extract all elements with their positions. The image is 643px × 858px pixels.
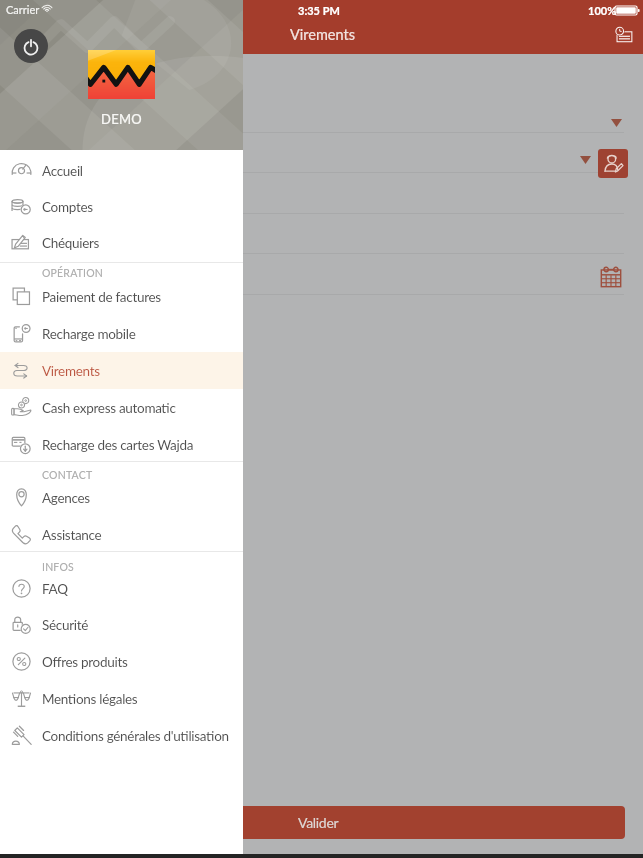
button[interactable]: Choisir un bénéficiaire [598, 149, 628, 178]
button[interactable]: Recharge des cartes Wajda [0, 426, 243, 463]
button[interactable]: Déconnexion [14, 29, 48, 63]
staticText: 3:35 PM [298, 4, 340, 17]
staticText: Accueil [42, 163, 83, 179]
button[interactable]: Assistance [0, 516, 243, 553]
button[interactable]: Choisir une date [600, 266, 622, 288]
button[interactable]: Mentions légales [0, 680, 243, 717]
button[interactable]: Chéquiers [0, 224, 243, 261]
button[interactable]: Paiement de factures [0, 278, 243, 315]
staticText: Assistance [42, 527, 102, 543]
button[interactable]: Accueil [0, 152, 243, 189]
staticText: FAQ [42, 581, 68, 597]
staticText: Virements [42, 363, 100, 379]
button[interactable]: Conditions générales d'utilisation [0, 717, 243, 754]
staticText: Sécurité [42, 617, 89, 633]
staticText: Recharge des cartes Wajda [42, 437, 194, 453]
staticText: Mentions légales [42, 691, 138, 707]
staticText: Carrier [6, 3, 40, 16]
staticText: DEMO [101, 111, 143, 127]
staticText: Cash express automatic [42, 400, 176, 416]
staticText: Agences [42, 490, 90, 506]
staticText: OPÉRATION [42, 267, 104, 280]
staticText: Conditions générales d'utilisation [42, 728, 229, 744]
button[interactable]: Cash express automatic [0, 389, 243, 426]
button[interactable]: Valider [160, 806, 625, 839]
button[interactable]: Recharge mobile [0, 315, 243, 352]
staticText: Comptes [42, 199, 93, 215]
button[interactable]: Historique des virements [610, 22, 636, 48]
staticText: INFOS [42, 561, 74, 574]
staticText: 100% [588, 4, 617, 17]
staticText: Virements [290, 26, 355, 43]
button[interactable]: Agences [0, 479, 243, 516]
button[interactable]: Sécurité [0, 606, 243, 643]
staticText: Recharge mobile [42, 326, 136, 342]
staticText: Chéquiers [42, 235, 100, 251]
button[interactable]: Comptes [0, 188, 243, 225]
button[interactable]: Virements [0, 352, 243, 389]
staticText: CONTACT [42, 469, 93, 482]
button[interactable]: Offres produits [0, 643, 243, 680]
staticText: Paiement de factures [42, 289, 161, 305]
button[interactable]: FAQ [0, 570, 243, 607]
staticText: Offres produits [42, 654, 128, 670]
staticText: Valider [298, 814, 339, 831]
